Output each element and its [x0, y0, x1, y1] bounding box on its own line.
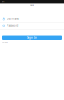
staticText: Sign In	[27, 36, 37, 39]
staticText: Forgot?	[2, 41, 8, 43]
button[interactable]: Forgot?	[0, 41, 64, 43]
button[interactable]: Password	[0, 22, 64, 29]
staticText: 9:41	[2, 1, 5, 3]
staticText: Sign In	[30, 4, 34, 6]
staticText: Username	[7, 17, 20, 20]
button[interactable]: Username	[0, 15, 64, 22]
staticText: Password	[7, 24, 19, 27]
button[interactable]: Sign In	[2, 35, 62, 40]
